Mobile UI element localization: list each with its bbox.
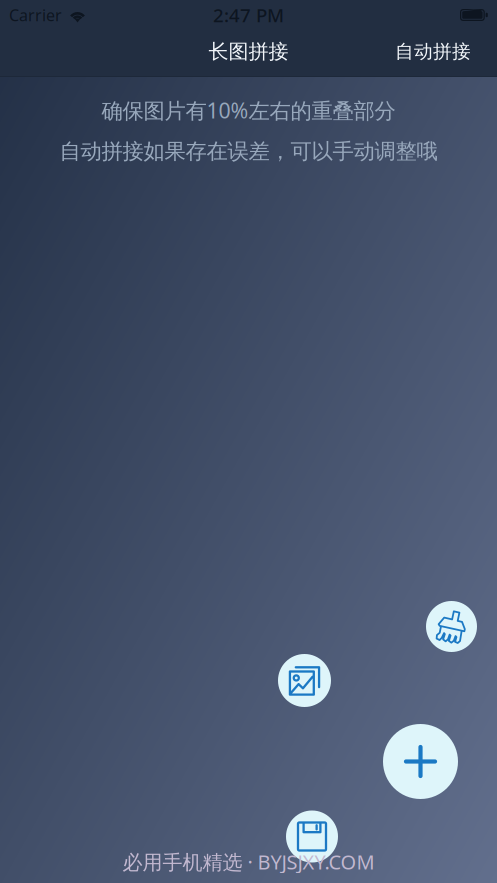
staticText: 自动拼接如果存在误差，可以手动调整哦 xyxy=(59,138,437,164)
staticText: 必用手机精选 · BYJSJXY.COM xyxy=(122,848,374,875)
staticText: 确保图片有10%左右的重叠部分 xyxy=(101,96,395,124)
staticText: 2:47 PM xyxy=(213,3,284,27)
button[interactable]: 选择图片 xyxy=(278,654,331,707)
button[interactable]: 自动拼接 xyxy=(387,34,479,69)
button[interactable]: 添加图片 xyxy=(383,724,458,799)
button[interactable]: 清理 xyxy=(426,601,477,652)
staticText: 长图拼接 xyxy=(208,39,288,64)
staticText: Carrier xyxy=(9,4,62,26)
button[interactable]: 保存 xyxy=(286,810,338,862)
staticText: 自动拼接 xyxy=(395,40,471,63)
